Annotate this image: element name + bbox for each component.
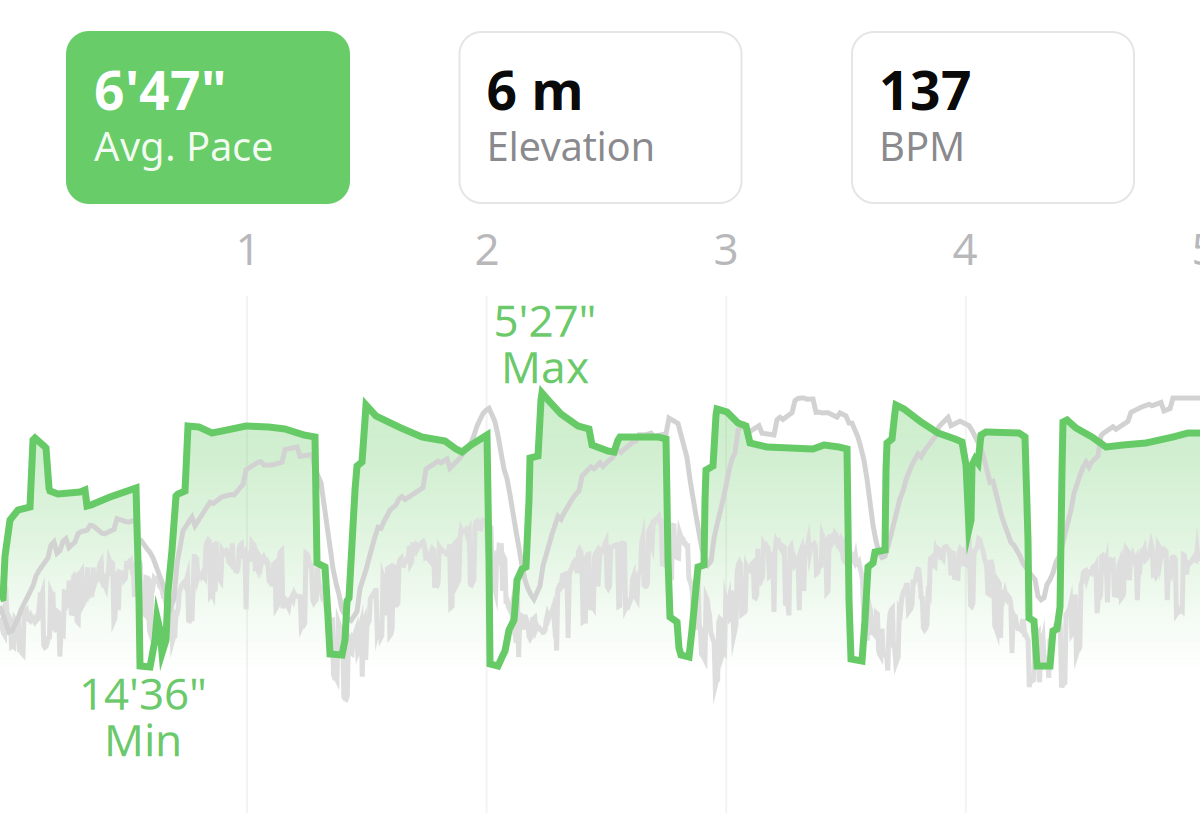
button[interactable]: 6'47" — [67, 32, 349, 203]
staticText: Min — [104, 710, 182, 768]
staticText: 2 — [474, 219, 499, 277]
button[interactable]: 137 — [852, 32, 1134, 203]
staticText: BPM — [879, 119, 965, 172]
staticText: 4 — [952, 219, 977, 277]
staticText: 5 — [1191, 219, 1200, 277]
staticText: 5'27" — [493, 291, 596, 349]
staticText: 3 — [713, 219, 738, 277]
staticText: Max — [501, 337, 589, 395]
staticText: 6 m — [486, 54, 583, 125]
staticText: Avg. Pace — [94, 119, 274, 172]
staticText: Elevation — [486, 119, 655, 172]
staticText: 137 — [879, 54, 972, 125]
button[interactable]: 6 m — [459, 32, 741, 203]
staticText: 14'36" — [79, 664, 207, 722]
staticText: 6'47" — [94, 54, 227, 125]
staticText: 1 — [235, 219, 260, 277]
